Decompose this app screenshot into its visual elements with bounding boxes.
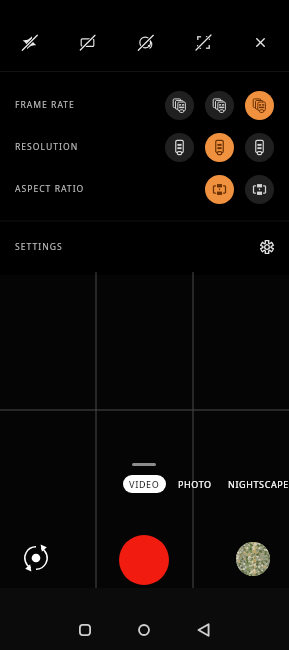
button[interactable]: NIGHTSCAPE [224, 475, 289, 493]
button[interactable]: ASPECT RATIO option 2 [245, 175, 274, 204]
staticText: PHOTO [178, 478, 212, 490]
button[interactable]: FRAME RATE option 2 [205, 91, 234, 120]
button[interactable]: Gallery [236, 542, 270, 576]
button[interactable]: ASPECT RATIO option 1 [205, 175, 234, 204]
button[interactable]: RESOLUTION option 2 [205, 133, 234, 162]
button[interactable]: Switch camera [22, 544, 50, 572]
staticText: SETTINGS [15, 241, 63, 253]
button[interactable]: Close [232, 20, 289, 64]
button[interactable]: SETTINGS [0, 210, 289, 283]
staticText: ASPECT RATIO [15, 183, 85, 195]
button[interactable]: Back [186, 612, 222, 648]
staticText: NIGHTSCAPE [228, 478, 289, 490]
button[interactable]: Audio off [116, 20, 174, 64]
button[interactable]: Screen off [58, 20, 116, 64]
button[interactable]: Recents [67, 612, 103, 648]
button[interactable]: VIDEO [123, 475, 166, 493]
staticText: RESOLUTION [15, 141, 79, 153]
staticText: VIDEO [129, 478, 160, 490]
staticText: FRAME RATE [15, 99, 75, 111]
button[interactable]: Flash off [0, 20, 58, 64]
button[interactable]: RESOLUTION option 1 [165, 133, 194, 162]
button[interactable]: PHOTO [172, 475, 217, 493]
button[interactable]: Record [119, 535, 169, 585]
button[interactable]: Home [126, 612, 162, 648]
button[interactable]: FRAME RATE option 1 [165, 91, 194, 120]
button[interactable]: FRAME RATE option 3 [245, 91, 274, 120]
button[interactable]: Stabilization off [174, 20, 232, 64]
button[interactable]: RESOLUTION option 3 [245, 133, 274, 162]
